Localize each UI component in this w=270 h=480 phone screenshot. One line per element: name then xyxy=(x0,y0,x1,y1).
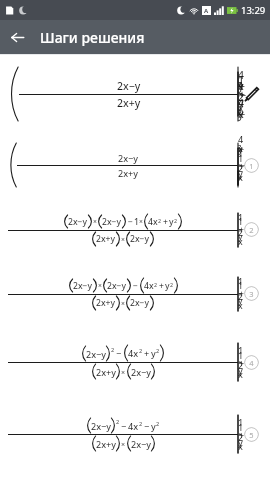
staticText: 1 xyxy=(134,216,139,228)
staticText: 2x+y xyxy=(96,297,116,309)
staticText: 2 xyxy=(139,347,143,355)
staticText: 2x+y xyxy=(96,438,116,450)
staticText: + xyxy=(163,216,168,228)
staticText: 1 xyxy=(249,161,254,171)
staticText: 2x−y xyxy=(118,152,138,164)
staticText: 3 xyxy=(249,289,254,299)
staticText: − xyxy=(133,280,138,292)
staticText: 2 xyxy=(158,217,162,224)
staticText: 2 xyxy=(154,281,158,288)
button[interactable]: Step 4 xyxy=(244,355,259,370)
button[interactable]: 2x−y xyxy=(0,261,270,325)
staticText: 2x−y xyxy=(130,233,150,245)
button[interactable]: 2x−y xyxy=(0,197,270,261)
staticText: + xyxy=(159,280,164,292)
staticText: 13:29 xyxy=(241,4,266,17)
button[interactable]: Step 1 xyxy=(244,158,259,173)
staticText: × xyxy=(121,299,125,308)
staticText: 2x−y xyxy=(131,366,151,378)
staticText: × xyxy=(98,281,102,290)
staticText: × xyxy=(93,217,97,226)
staticText: 2 xyxy=(111,346,115,354)
button[interactable]: Step 3 xyxy=(244,286,259,301)
staticText: 2x−y xyxy=(73,280,93,292)
staticText: × xyxy=(121,439,126,449)
staticText: 2x−y xyxy=(102,216,122,228)
staticText: y xyxy=(151,420,156,432)
staticText: Шаги решения xyxy=(40,28,145,47)
staticText: 2x−y xyxy=(86,348,106,360)
staticText: 2x−y xyxy=(131,438,151,450)
staticText: y xyxy=(151,347,156,359)
staticText: 2x+y xyxy=(118,167,138,179)
staticText: 2 xyxy=(249,225,254,235)
staticText: − xyxy=(144,420,150,432)
staticText: 2 xyxy=(116,418,120,426)
staticText: 4x xyxy=(148,216,158,228)
button[interactable]: 2x−y xyxy=(0,133,270,197)
button[interactable]: 2x−y xyxy=(0,55,270,133)
staticText: − xyxy=(128,216,133,228)
staticText: − xyxy=(116,347,122,359)
staticText: 2 xyxy=(139,420,143,428)
staticText: 2x−y xyxy=(107,280,127,292)
staticText: A xyxy=(204,7,209,15)
button[interactable]: 2x−y xyxy=(0,325,270,399)
staticText: × xyxy=(121,235,125,244)
staticText: 4x xyxy=(144,280,154,292)
staticText: 2x+y xyxy=(96,233,116,245)
staticText: y xyxy=(169,216,174,228)
button[interactable]: Step 5 xyxy=(244,427,259,442)
button[interactable]: Step 2 xyxy=(244,222,259,237)
button[interactable]: 2x−y xyxy=(0,399,270,469)
staticText: y xyxy=(165,280,170,292)
staticText: 2x−y xyxy=(68,216,88,228)
staticText: 2 xyxy=(174,217,178,224)
staticText: 2x−y xyxy=(117,79,141,93)
staticText: − xyxy=(121,420,127,432)
staticText: 5 xyxy=(249,430,254,440)
staticText: 2 xyxy=(170,281,174,288)
staticText: 2 xyxy=(156,420,160,428)
staticText: 4x xyxy=(128,420,139,432)
staticText: × xyxy=(121,367,126,377)
staticText: 2x+y xyxy=(117,96,141,110)
button[interactable]: Edit expression xyxy=(240,83,262,105)
staticText: 2 xyxy=(156,347,160,355)
staticText: 4 xyxy=(249,358,254,368)
staticText: + xyxy=(144,347,150,359)
button[interactable]: Back xyxy=(0,20,34,54)
staticText: 2x−y xyxy=(91,420,111,432)
staticText: × xyxy=(139,217,143,226)
staticText: 2x−y xyxy=(130,297,150,309)
staticText: 4x xyxy=(128,347,139,359)
staticText: 2x+y xyxy=(96,366,116,378)
